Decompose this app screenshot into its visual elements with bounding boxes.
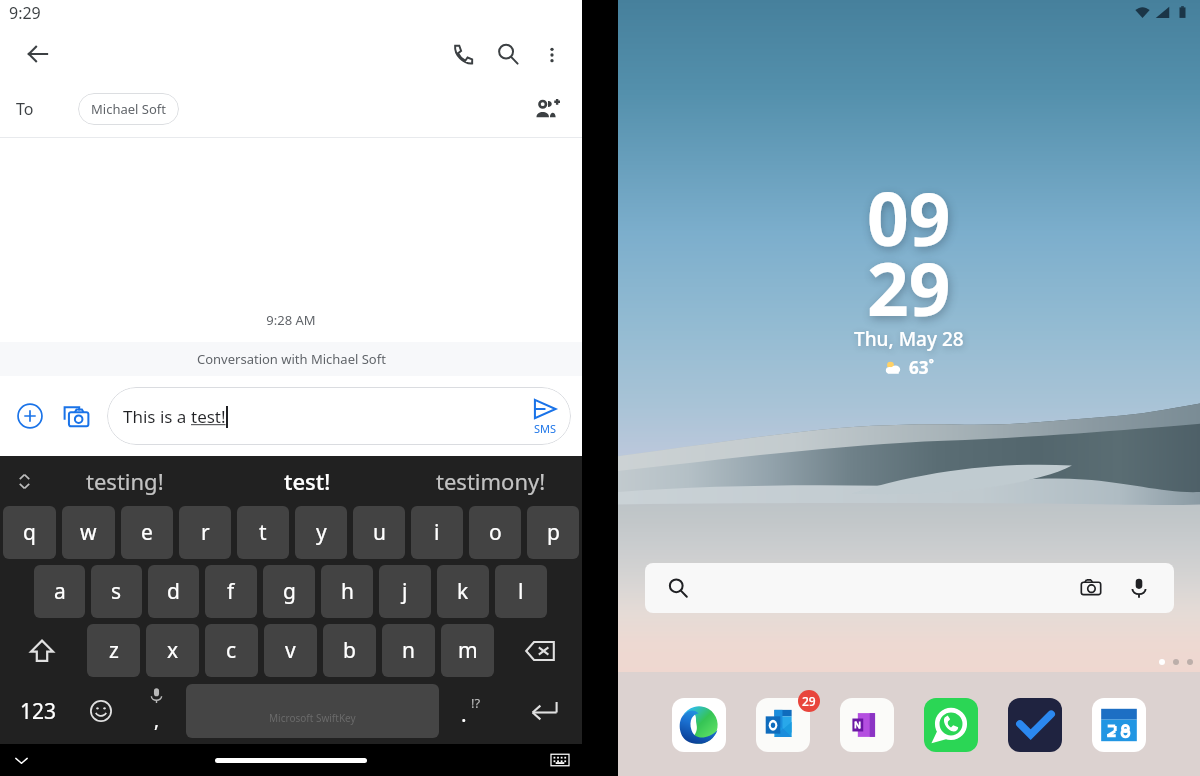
button[interactable]: o [469,506,521,559]
staticText: p [547,518,560,547]
button[interactable]: b [323,624,376,677]
staticText: To [16,98,34,120]
staticText: 9:28 AM [0,311,582,329]
staticText: z [109,636,119,665]
button[interactable]: Voice input and comma [127,683,186,739]
button[interactable]: l [495,565,547,618]
button[interactable]: s [91,565,142,618]
staticText: r [201,518,210,547]
button[interactable]: Add people [526,87,570,131]
button[interactable]: i [411,506,463,559]
button[interactable]: This is a [107,387,571,445]
button[interactable]: Outlook [756,698,810,752]
button[interactable]: Backspace [500,624,579,677]
button[interactable]: Punctuation [439,683,507,739]
button[interactable]: Michael Soft [78,93,179,125]
staticText: v [285,636,296,665]
button[interactable]: j [379,565,431,618]
button[interactable]: f [205,565,257,618]
staticText: f [227,577,235,606]
button[interactable]: q [3,506,56,559]
button[interactable]: g [263,565,315,618]
button[interactable]: More options [531,34,572,75]
staticText: k [457,577,469,606]
staticText: 9:29 [9,2,41,24]
button[interactable]: WhatsApp [924,698,978,752]
button[interactable]: Calendar [1092,698,1146,752]
staticText: g [283,577,296,606]
button[interactable]: m [441,624,494,677]
button[interactable]: Back [14,30,62,78]
button[interactable]: a [34,565,85,618]
button[interactable]: OneNote [840,698,894,752]
staticText: q [23,518,36,547]
button[interactable]: z [87,624,140,677]
staticText: x [167,636,179,665]
button[interactable]: t [237,506,289,559]
button[interactable]: Emoji [74,683,127,739]
staticText: y [316,518,327,547]
staticText: 123 [20,697,57,726]
staticText: 09 [867,168,951,267]
staticText: e [141,518,153,547]
staticText: t [259,518,267,547]
other: Hide keyboard [14,753,29,768]
staticText: testing! [86,466,164,496]
button[interactable]: y [295,506,347,559]
staticText: 29 [867,238,951,337]
button[interactable]: v [264,624,317,677]
button[interactable]: x [146,624,199,677]
button[interactable]: Attach [8,394,52,438]
button[interactable]: h [321,565,373,618]
button[interactable]: 123 [2,683,74,739]
staticText: c [226,636,237,665]
other: Switch keyboard [551,751,569,769]
staticText: l [518,577,524,606]
staticText: Thu, May 28 [854,326,964,352]
staticText: 29 [802,693,816,709]
button[interactable]: p [527,506,579,559]
staticText: j [402,577,408,606]
staticText: testimony! [436,466,546,496]
staticText: i [434,518,440,547]
staticText: 63˚ [909,356,934,379]
staticText: u [373,518,386,547]
staticText: m [458,636,478,665]
staticText: This is a [123,405,191,428]
staticText: Microsoft SwiftKey [269,711,356,725]
button[interactable]: Microsoft Edge [672,698,726,752]
staticText: test! [191,405,226,428]
staticText: h [341,577,354,606]
button[interactable]: To Do [1008,698,1062,752]
staticText: s [111,577,122,606]
staticText: w [80,518,97,547]
button[interactable]: u [353,506,405,559]
staticText: , [154,707,160,733]
button[interactable]: Camera [54,394,98,438]
staticText: o [489,518,502,547]
button[interactable]: d [148,565,199,618]
button[interactable]: e [121,506,173,559]
staticText: Conversation with Michael Soft [197,350,386,368]
staticText: test! [284,466,331,496]
staticText: b [343,636,356,665]
button[interactable]: k [437,565,489,618]
button[interactable]: Shift [3,624,81,677]
staticText: Michael Soft [91,100,166,118]
staticText: SMS [534,421,557,436]
button[interactable]: n [382,624,435,677]
staticText: !? [471,694,481,712]
button[interactable]: c [205,624,258,677]
button[interactable]: r [179,506,231,559]
staticText: n [402,636,415,665]
button[interactable]: Enter [507,683,580,739]
button[interactable] [645,563,1174,613]
staticText: d [167,577,180,606]
button[interactable]: Microsoft SwiftKey [186,684,439,738]
button[interactable]: Search [485,31,531,77]
button[interactable]: Call [439,31,485,77]
button[interactable]: w [62,506,115,559]
staticText: a [54,577,66,606]
staticText: . [461,700,467,729]
